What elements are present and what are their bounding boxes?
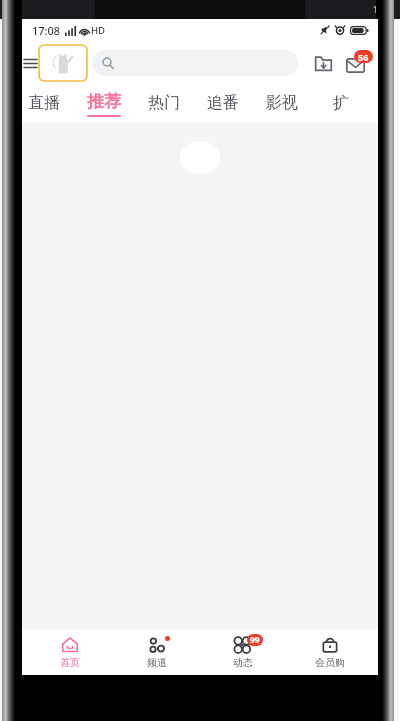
button[interactable]: 频道 [119, 629, 195, 675]
staticText: 会员购 [315, 656, 345, 669]
button[interactable]: 热门 [134, 85, 193, 123]
button[interactable]: 影视 [252, 85, 311, 123]
button[interactable]: 追番 [193, 85, 252, 123]
button[interactable]: 扩 [311, 85, 370, 123]
button[interactable]: 推荐 [74, 85, 134, 123]
button[interactable]: 直播 [14, 85, 74, 123]
staticText: 追番 [207, 93, 239, 113]
staticText: 直播 [28, 93, 60, 113]
staticText: 首页 [60, 656, 80, 669]
staticText: 17:08 [32, 23, 61, 38]
staticText: 推荐 [87, 91, 121, 112]
button[interactable]: Messages, 56 unread [340, 48, 374, 78]
staticText: 扩 [333, 93, 349, 113]
staticText: 频道 [147, 656, 167, 669]
staticText: 影视 [266, 93, 298, 113]
button[interactable]: 会员购 [292, 629, 368, 675]
button[interactable] [92, 50, 298, 76]
staticText: 10:10 [373, 4, 394, 15]
staticText: 99 [250, 634, 260, 646]
button[interactable]: 99 [205, 629, 281, 675]
staticText: 56 [358, 51, 369, 63]
staticText: HD [91, 24, 106, 37]
button[interactable]: Menu [22, 41, 38, 85]
staticText: 热门 [148, 93, 180, 113]
button[interactable]: 首页 [32, 629, 108, 675]
button[interactable]: Avatar [38, 44, 88, 82]
button[interactable]: Downloads [308, 48, 338, 78]
staticText: 动态 [233, 656, 253, 669]
